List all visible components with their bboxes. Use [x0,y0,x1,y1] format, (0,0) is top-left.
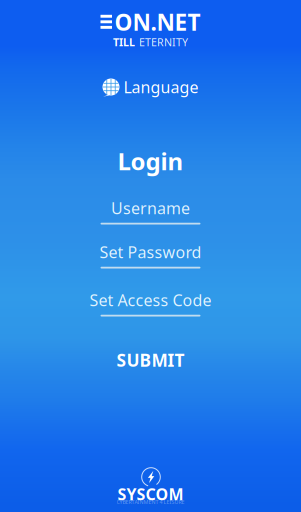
staticText: Set Access Code [89,289,211,311]
staticText: CYBERTAINMENT 4 LEISURE [116,498,184,506]
staticText: ETERNITY [139,35,188,49]
staticText: ON.NET [114,7,200,37]
button[interactable]: SUBMIT [100,340,200,379]
button[interactable]: Username [70,196,230,226]
staticText: Set Password [99,241,201,263]
staticText: SYSCOM [117,483,183,505]
staticText: Language [123,76,198,98]
button[interactable]: Language [97,71,203,103]
button[interactable]: Set Password [70,240,230,270]
staticText: SUBMIT [116,348,184,371]
staticText: Username [111,197,190,219]
staticText: Login [117,145,183,177]
staticText: TILL [113,35,135,49]
button[interactable]: Set Access Code [70,288,230,318]
